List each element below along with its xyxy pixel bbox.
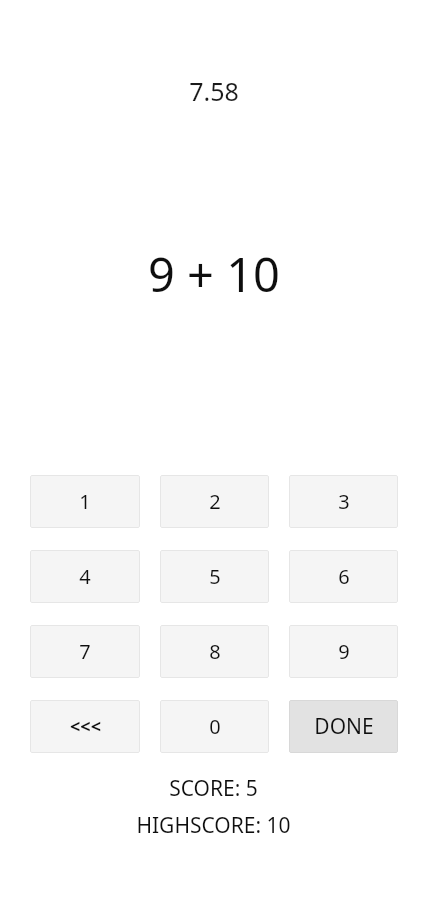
staticText: SCORE: 5 [169, 774, 258, 803]
staticText: 6 [338, 563, 350, 590]
button[interactable]: 4 [30, 550, 140, 603]
staticText: 4 [79, 563, 91, 590]
button[interactable]: 1 [30, 475, 140, 528]
staticText: 8 [209, 638, 221, 665]
button[interactable]: 2 [160, 475, 269, 528]
staticText: 2 [209, 488, 221, 515]
staticText: 9 + 10 [148, 242, 280, 306]
button[interactable]: 8 [160, 625, 269, 678]
staticText: 9 [338, 638, 350, 665]
staticText: HIGHSCORE: 10 [136, 811, 291, 840]
button[interactable]: 6 [289, 550, 398, 603]
button[interactable]: 3 [289, 475, 398, 528]
button[interactable]: 0 [160, 700, 269, 753]
button[interactable]: DONE [289, 700, 398, 753]
staticText: DONE [314, 712, 374, 741]
staticText: <<< [70, 714, 101, 739]
staticText: 0 [209, 713, 221, 740]
button[interactable]: 7 [30, 625, 140, 678]
staticText: 7 [79, 638, 91, 665]
button[interactable]: 9 [289, 625, 398, 678]
button[interactable]: 5 [160, 550, 269, 603]
staticText: 3 [338, 488, 350, 515]
staticText: 1 [79, 488, 91, 515]
staticText: 7.58 [189, 74, 239, 108]
staticText: 5 [209, 563, 221, 590]
button[interactable]: Backspace [30, 700, 140, 753]
